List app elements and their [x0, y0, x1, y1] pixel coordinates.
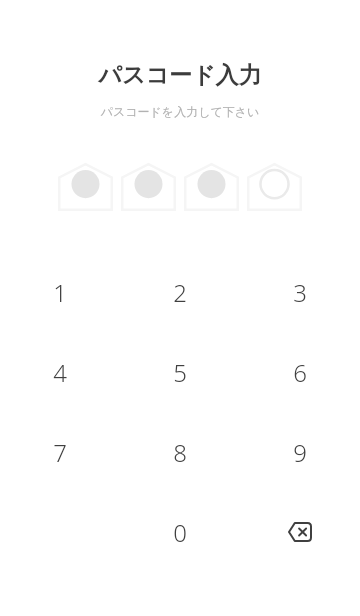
staticText: 8 [173, 436, 187, 469]
staticText: 0 [173, 516, 187, 549]
staticText: パスコード入力 [0, 61, 360, 90]
staticText: 2 [173, 276, 187, 309]
button[interactable]: 8 [120, 412, 240, 492]
staticText: 4 [53, 356, 67, 389]
button[interactable]: 6 [240, 332, 360, 412]
button[interactable]: 4 [0, 332, 120, 412]
staticText: 3 [293, 276, 307, 309]
button[interactable]: 5 [120, 332, 240, 412]
button[interactable]: 1 [0, 252, 120, 332]
staticText: 6 [293, 356, 307, 389]
button[interactable]: 7 [0, 412, 120, 492]
button[interactable]: 0 [120, 492, 240, 572]
staticText: 9 [293, 436, 307, 469]
staticText: パスコードを入力して下さい [0, 104, 360, 119]
button[interactable]: 3 [240, 252, 360, 332]
staticText: 5 [173, 356, 187, 389]
staticText: 7 [53, 436, 67, 469]
button[interactable]: 2 [120, 252, 240, 332]
button[interactable]: Backspace [240, 492, 360, 572]
button[interactable]: 9 [240, 412, 360, 492]
staticText: 1 [53, 276, 67, 309]
